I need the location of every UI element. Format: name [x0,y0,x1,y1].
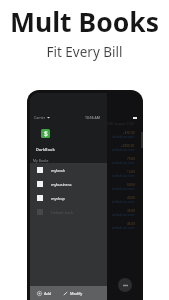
staticText: default account [112,174,135,178]
button[interactable]: Default book [30,205,107,219]
button[interactable]: Modify [63,291,83,296]
staticText: Modify [70,291,83,296]
staticText: 45.00 [127,222,135,226]
staticText: myshop [51,196,65,201]
staticText: Carrier [34,115,46,120]
staticText: Default book [51,210,74,215]
staticText: Mult Books [10,4,159,40]
staticText: 50.00 [127,183,135,187]
staticText: default account [112,226,135,230]
button[interactable]: mybusiness [30,177,107,191]
staticText: 10:56 AM [85,115,100,120]
staticText: default account [112,187,135,191]
button[interactable]: myshop [30,191,107,205]
button[interactable]: Add transaction [118,278,132,292]
staticText: mybusiness [51,182,72,187]
staticText: USD august 7/20 [107,121,134,126]
staticText: My Books [33,158,49,163]
staticText: default account [112,148,135,152]
staticText: default account [112,161,135,165]
staticText: 13.00 [127,170,135,174]
staticText: 79.00 [127,157,135,161]
staticText: default account [112,200,135,204]
staticText: $ [44,129,48,138]
staticText: DarkBook [36,147,55,152]
staticText: 40.00 [127,196,135,200]
staticText: default account [112,135,135,139]
staticText: default account [112,213,135,217]
staticText: mybook [51,168,66,173]
staticText: 35.00 [127,209,135,213]
staticText: Fit Every Bill [46,43,123,61]
staticText: Add [44,291,52,296]
staticText: +$10.00 [123,131,135,135]
button[interactable]: mybook [30,163,107,177]
staticText: +$200.00 [121,144,135,148]
button[interactable]: Add [37,291,52,296]
